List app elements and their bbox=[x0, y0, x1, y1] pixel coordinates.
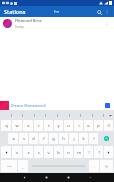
staticText: h bbox=[62, 136, 65, 141]
staticText: k bbox=[82, 136, 85, 141]
button[interactable]: Emoji bbox=[100, 160, 113, 172]
staticText: fm bbox=[54, 9, 60, 14]
button[interactable]: Expand suggestions bbox=[106, 111, 114, 119]
staticText: c bbox=[38, 150, 40, 155]
button[interactable]: Suggestion bbox=[8, 113, 14, 117]
button[interactable]: y bbox=[54, 120, 63, 131]
button[interactable]: n bbox=[64, 146, 73, 158]
button[interactable]: w bbox=[12, 120, 22, 131]
button[interactable]: t bbox=[44, 120, 53, 131]
button[interactable]: Suggestion bbox=[100, 113, 106, 117]
button[interactable]: d bbox=[29, 133, 38, 144]
button[interactable]: i bbox=[74, 120, 83, 131]
staticText: x bbox=[27, 150, 30, 155]
staticText: ! bbox=[88, 150, 90, 155]
staticText: o bbox=[87, 123, 90, 128]
button[interactable]: b bbox=[54, 146, 63, 158]
button[interactable]: x bbox=[23, 146, 33, 158]
button[interactable]: Suggestion bbox=[89, 113, 95, 117]
button[interactable]: c bbox=[34, 146, 43, 158]
button[interactable]: ? bbox=[94, 146, 103, 158]
staticText: q bbox=[5, 123, 8, 128]
staticText: a bbox=[12, 136, 15, 141]
button[interactable]: Hide keyboard bbox=[86, 173, 95, 182]
button[interactable]: Shift bbox=[104, 146, 113, 158]
staticText: i bbox=[78, 123, 80, 128]
staticText: Dreams (Remastered) bbox=[11, 103, 46, 108]
button[interactable]: Space bbox=[29, 160, 88, 172]
staticText: y bbox=[57, 123, 60, 128]
button[interactable]: Recents bbox=[64, 173, 73, 182]
staticText: n bbox=[67, 150, 70, 155]
button[interactable]: k bbox=[79, 133, 88, 144]
button[interactable]: f bbox=[39, 133, 48, 144]
button[interactable]: z bbox=[12, 146, 22, 158]
button[interactable]: Suggestion bbox=[77, 113, 83, 117]
button[interactable]: l bbox=[89, 133, 98, 144]
button[interactable]: Flitwood Bros bbox=[0, 17, 114, 30]
staticText: u bbox=[67, 123, 70, 128]
staticText: s bbox=[23, 136, 25, 141]
button[interactable]: More options bbox=[103, 8, 111, 16]
button[interactable]: Suggestion bbox=[42, 113, 48, 117]
button[interactable]: Suggestion bbox=[54, 113, 60, 117]
staticText: Stations bbox=[4, 8, 26, 15]
button[interactable]: Backspace bbox=[104, 120, 113, 131]
button[interactable]: Suggestion bbox=[19, 113, 25, 117]
button[interactable]: q bbox=[1, 120, 11, 131]
button[interactable]: r bbox=[34, 120, 43, 131]
button[interactable]: g bbox=[49, 133, 58, 144]
button[interactable]: Home bbox=[42, 173, 51, 182]
button[interactable]: o bbox=[84, 120, 93, 131]
button[interactable]: ?123 bbox=[1, 160, 17, 172]
button[interactable]: Search bbox=[95, 8, 103, 16]
staticText: j bbox=[73, 136, 75, 141]
staticText: p bbox=[97, 123, 100, 128]
staticText: Today bbox=[15, 25, 24, 29]
button[interactable]: Cast bbox=[102, 100, 112, 110]
button[interactable]: Suggestion bbox=[66, 113, 72, 117]
staticText: z bbox=[16, 150, 18, 155]
button[interactable]: Station options bbox=[103, 20, 111, 28]
staticText: Flitwood Bros bbox=[15, 18, 42, 24]
button[interactable]: e bbox=[23, 120, 33, 131]
staticText: m bbox=[77, 150, 81, 155]
staticText: ?123 bbox=[7, 165, 12, 168]
staticText: , bbox=[22, 164, 24, 169]
button[interactable]: m bbox=[74, 146, 83, 158]
staticText: t bbox=[48, 123, 50, 128]
staticText: r bbox=[38, 123, 40, 128]
staticText: e bbox=[27, 123, 30, 128]
button[interactable]: Back bbox=[20, 173, 29, 182]
button[interactable]: s bbox=[19, 133, 28, 144]
staticText: w bbox=[15, 123, 19, 128]
button[interactable]: h bbox=[59, 133, 68, 144]
staticText: b bbox=[57, 150, 60, 155]
staticText: g bbox=[52, 136, 55, 141]
staticText: . bbox=[93, 164, 95, 169]
button[interactable]: Dreams (Remastered) bbox=[0, 100, 114, 110]
staticText: v bbox=[47, 150, 50, 155]
button[interactable]: u bbox=[64, 120, 73, 131]
button[interactable]: v bbox=[44, 146, 53, 158]
staticText: f bbox=[43, 136, 45, 141]
button[interactable]: Shift bbox=[1, 146, 11, 158]
button[interactable]: ! bbox=[84, 146, 93, 158]
staticText: d bbox=[32, 136, 35, 141]
button[interactable]: p bbox=[94, 120, 103, 131]
staticText: l bbox=[93, 136, 95, 141]
button[interactable]: j bbox=[69, 133, 78, 144]
button[interactable]: , bbox=[18, 160, 28, 172]
button[interactable]: a bbox=[8, 133, 18, 144]
button[interactable]: Search bbox=[104, 136, 109, 141]
staticText: ? bbox=[98, 150, 100, 155]
button[interactable]: Suggestion bbox=[31, 113, 37, 117]
